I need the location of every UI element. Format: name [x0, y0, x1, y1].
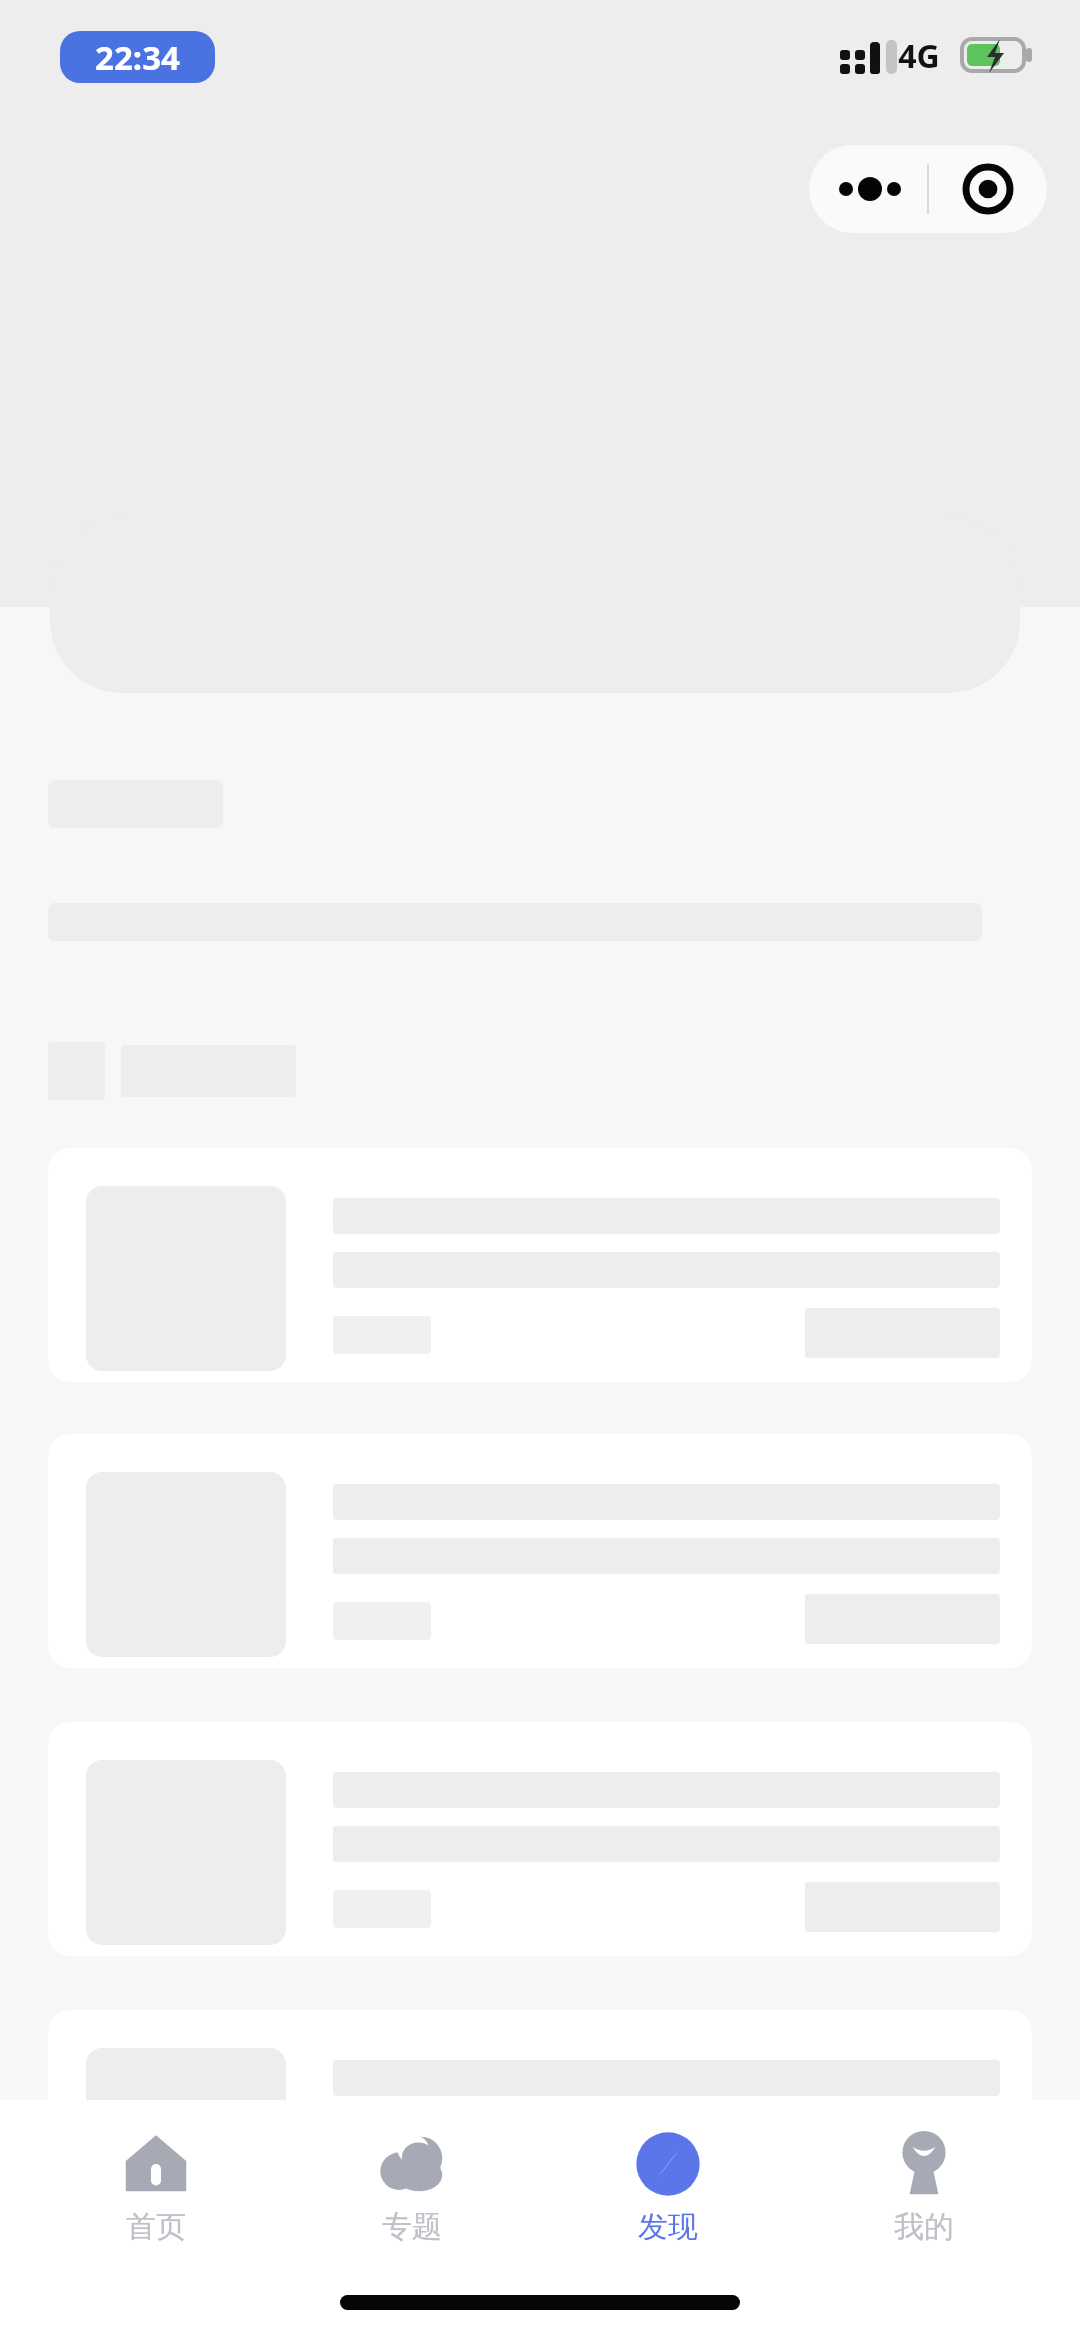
button[interactable]: 发现 — [568, 2100, 768, 2275]
button[interactable]: 首页 — [56, 2100, 256, 2275]
button[interactable] — [48, 2010, 1032, 2244]
staticText: 4G — [898, 34, 940, 78]
staticText: 我的 — [894, 2208, 954, 2246]
staticText: 专题 — [382, 2208, 442, 2246]
button[interactable] — [48, 1434, 1032, 1668]
staticText: 首页 — [126, 2208, 186, 2246]
staticText: 22:34 — [95, 35, 180, 80]
button[interactable]: 专题 — [312, 2100, 512, 2275]
button[interactable]: 我的 — [824, 2100, 1024, 2275]
button[interactable]: More options — [809, 145, 927, 233]
button[interactable] — [48, 1148, 1032, 1382]
staticText: 发现 — [638, 2208, 698, 2246]
button[interactable] — [48, 1722, 1032, 1956]
button[interactable]: Close mini program — [929, 145, 1047, 233]
